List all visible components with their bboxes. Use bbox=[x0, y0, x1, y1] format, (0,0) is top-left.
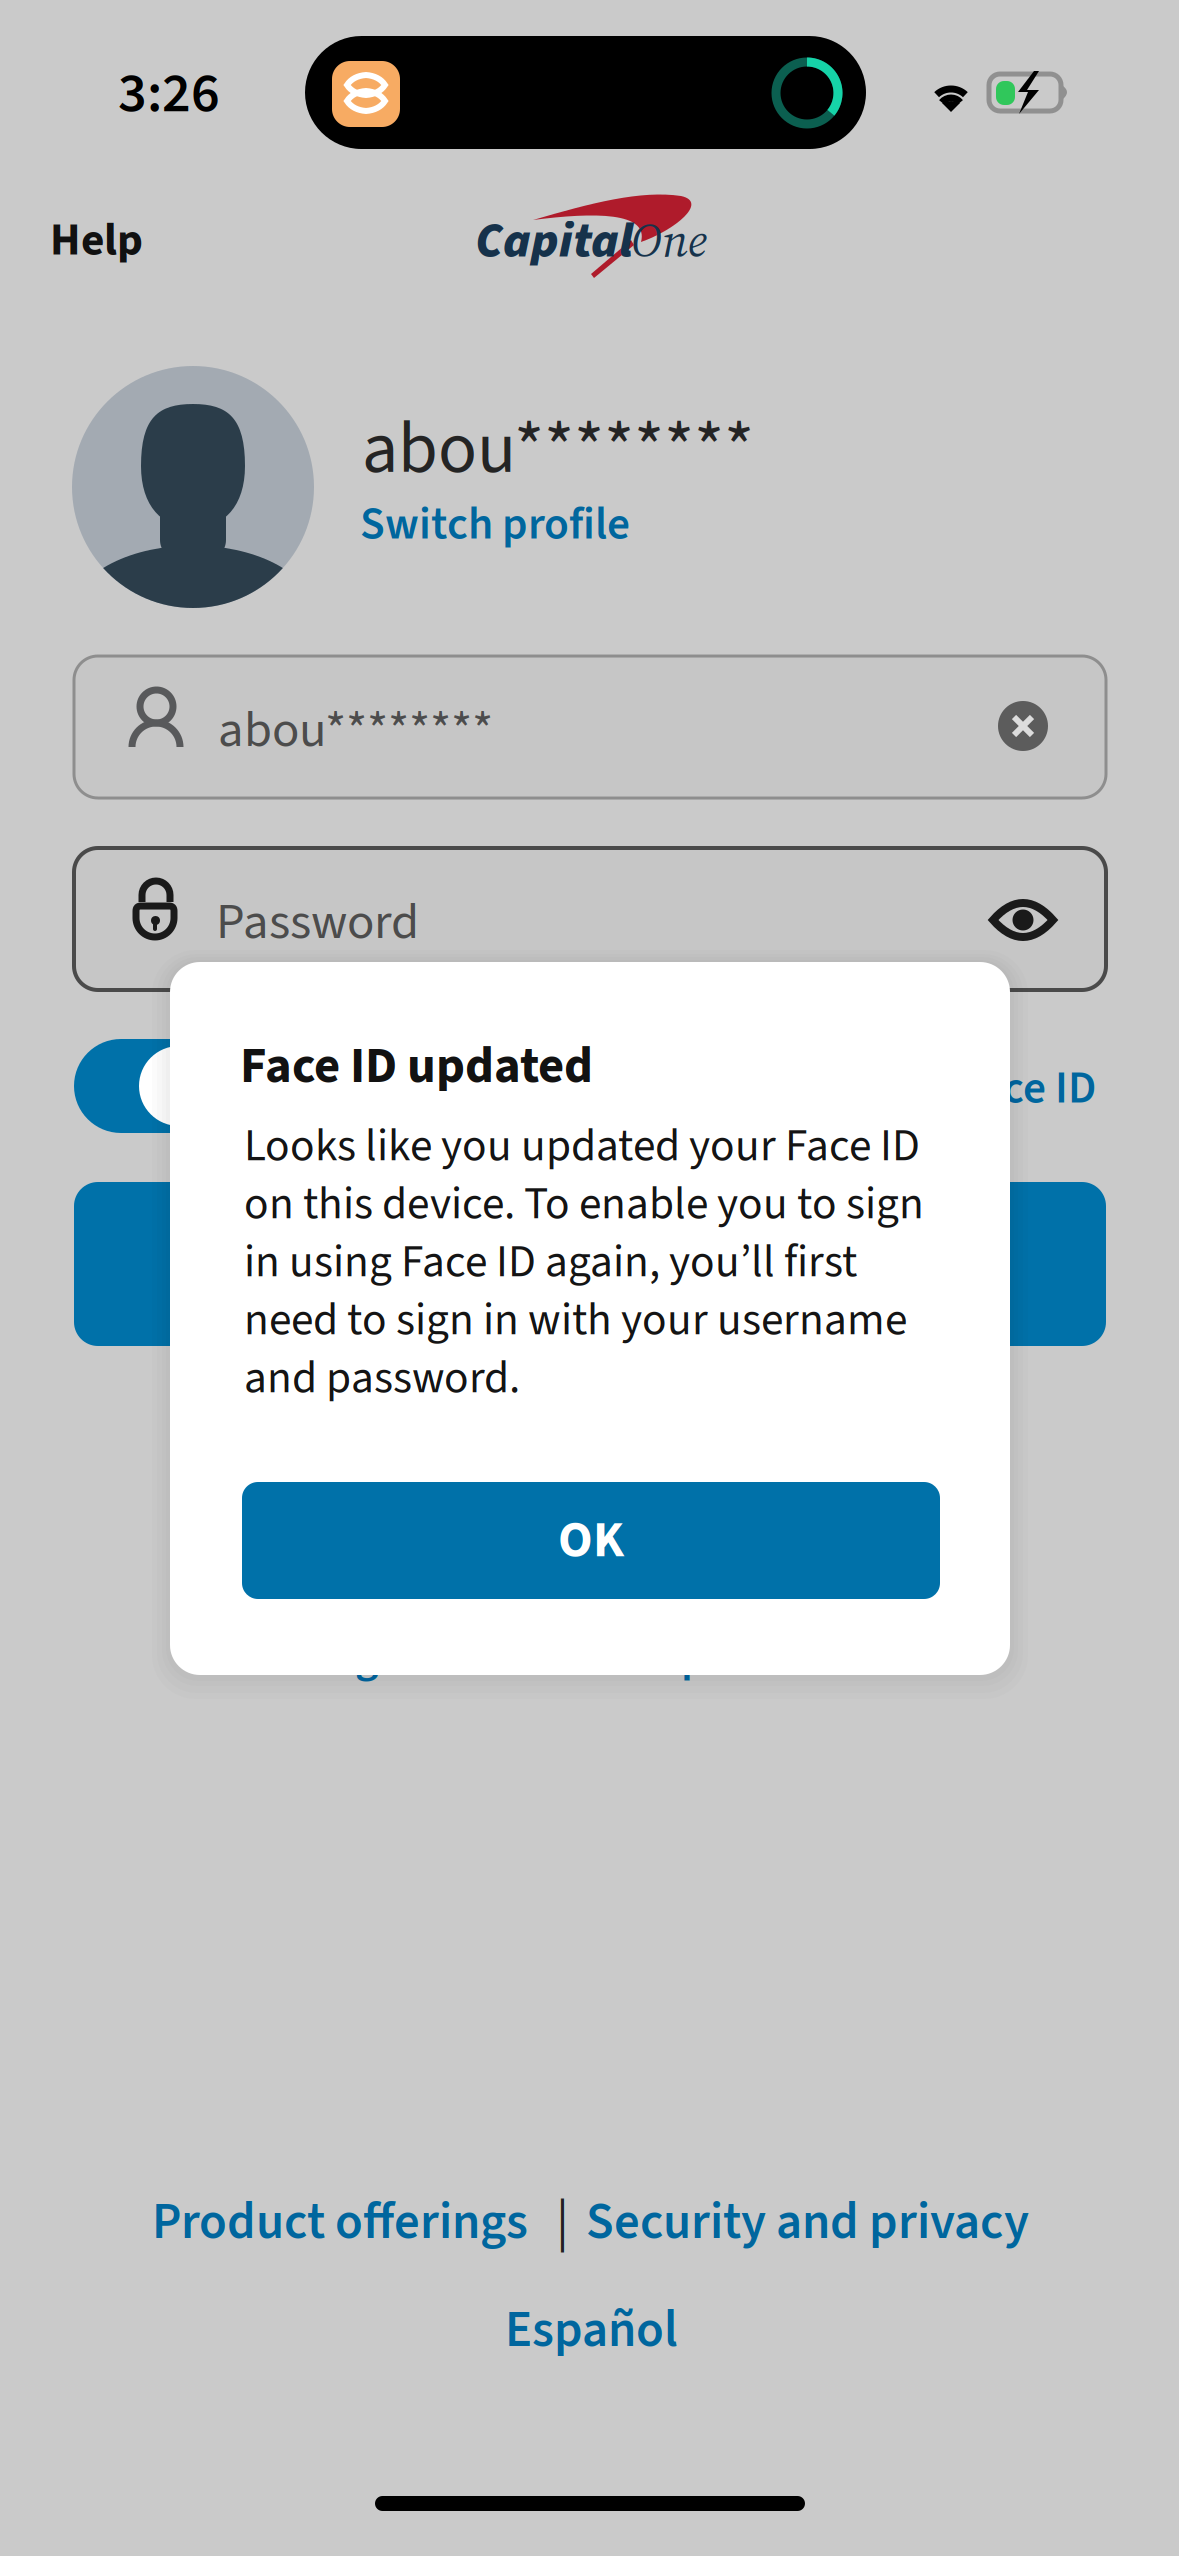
button[interactable]: Switch profile bbox=[360, 492, 630, 557]
staticText: in using Face ID again, you’ll first bbox=[244, 1230, 857, 1294]
button[interactable]: Show password bbox=[990, 898, 1056, 942]
button[interactable]: Help bbox=[42, 208, 151, 273]
staticText: Capital bbox=[475, 206, 633, 276]
staticText: abou******** bbox=[218, 694, 493, 766]
staticText: OK bbox=[558, 1504, 624, 1576]
button[interactable]: Product offerings bbox=[152, 2186, 528, 2258]
staticText: | bbox=[556, 2184, 569, 2260]
staticText: Español bbox=[505, 2294, 678, 2366]
button[interactable]: Forgot username or password? bbox=[292, 1625, 890, 1690]
staticText: Forgot username or password? bbox=[292, 1625, 890, 1690]
staticText: need to sign in with your username bbox=[244, 1288, 907, 1352]
staticText: Password bbox=[216, 886, 419, 958]
staticText: Looks like you updated your Face ID bbox=[244, 1114, 920, 1178]
staticText: abou******** bbox=[362, 398, 754, 500]
button[interactable]: Español bbox=[505, 2294, 678, 2366]
button[interactable]: Sign in with Face ID bbox=[74, 1039, 226, 1133]
staticText: 3:26 bbox=[118, 54, 220, 134]
staticText: and password. bbox=[244, 1346, 520, 1410]
staticText: Switch profile bbox=[360, 492, 630, 557]
staticText: Sign in with Face ID bbox=[722, 1056, 1096, 1121]
button[interactable]: Security and privacy bbox=[586, 2186, 1029, 2258]
button[interactable]: Clear username bbox=[998, 701, 1048, 751]
button[interactable]: Sign in bbox=[74, 1182, 1106, 1346]
staticText: on this device. To enable you to sign bbox=[244, 1172, 924, 1236]
staticText: Security and privacy bbox=[586, 2186, 1029, 2258]
button[interactable]: OK bbox=[242, 1482, 940, 1599]
staticText: Help bbox=[50, 208, 143, 273]
staticText: Face ID updated bbox=[240, 1030, 593, 1102]
staticText: Product offerings bbox=[152, 2186, 528, 2258]
staticText: One bbox=[631, 207, 707, 273]
staticText: Sign in bbox=[517, 1228, 663, 1300]
